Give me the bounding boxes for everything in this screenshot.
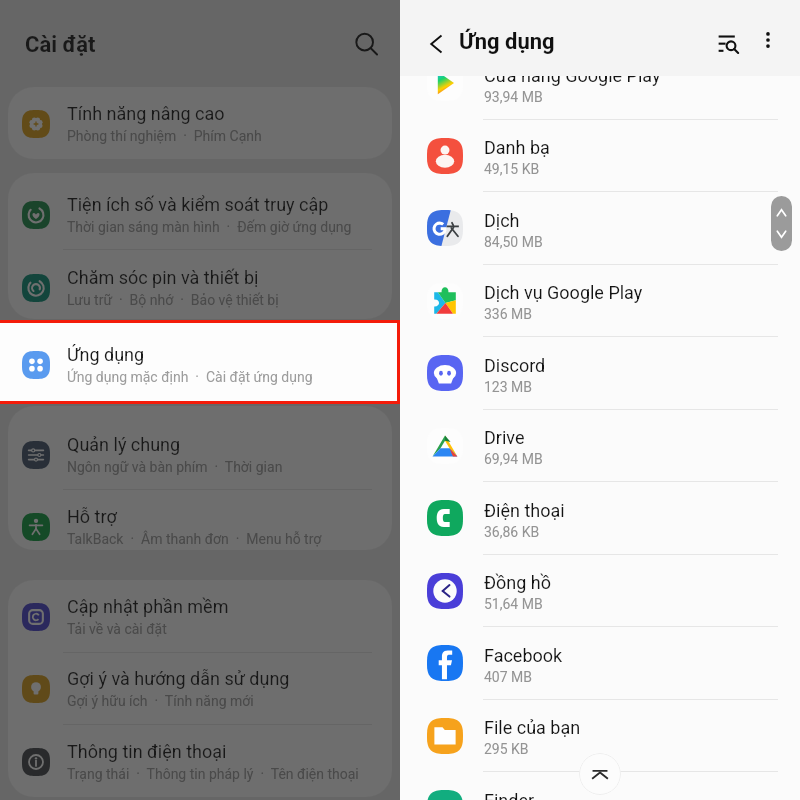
button[interactable]: Gợi ý và hướng dẫn sử dụng — [8, 652, 392, 724]
staticText: Quản lý chung — [67, 434, 181, 455]
staticText: Phòng thí nghiệm · Phím Cạnh — [67, 128, 262, 144]
staticText: Chăm sóc pin và thiết bị — [67, 267, 259, 288]
staticText: Facebook — [484, 645, 563, 666]
button[interactable]: More options — [760, 32, 776, 48]
staticText: Cửa hàng Google Play — [484, 65, 661, 86]
staticText: TalkBack · Âm thanh đơn · Menu hỗ trợ — [67, 531, 322, 547]
button[interactable] — [400, 481, 800, 554]
staticText: 336 MB — [484, 306, 533, 322]
button[interactable]: Tiện ích số và kiểm soát truy cập — [8, 173, 392, 246]
staticText: Thời gian sáng màn hình · Đếm giờ ứng dụ… — [67, 219, 352, 235]
staticText: 36,86 KB — [484, 524, 540, 540]
staticText: Tính năng nâng cao — [67, 103, 225, 124]
button[interactable]: Ứng dụng — [8, 322, 392, 402]
button[interactable] — [400, 191, 800, 264]
staticText: Lưu trữ · Bộ nhớ · Bảo vệ thiết bị — [67, 292, 279, 308]
button[interactable] — [400, 264, 800, 337]
staticText: 49,15 KB — [484, 161, 540, 177]
staticText: Trạng thái · Thông tin pháp lý · Tên điệ… — [67, 766, 359, 782]
button[interactable]: Sort and search — [718, 34, 739, 55]
staticText: 51,64 MB — [484, 596, 543, 612]
button[interactable] — [400, 699, 800, 772]
staticText: Hỗ trợ — [67, 506, 117, 527]
staticText: 407 MB — [484, 669, 533, 685]
staticText: Danh bạ — [484, 137, 550, 158]
button[interactable]: Back — [428, 35, 446, 53]
button[interactable]: Search — [354, 32, 380, 58]
staticText: Gợi ý hữu ích · Tính năng mới — [67, 693, 254, 709]
staticText: Tiện ích số và kiểm soát truy cập — [67, 194, 329, 215]
button[interactable]: Quản lý chung — [8, 406, 392, 478]
staticText: Điện thoại — [484, 500, 565, 521]
staticText: Dịch vụ Google Play — [484, 282, 643, 303]
staticText: Cài đặt — [25, 32, 96, 58]
button[interactable] — [400, 46, 800, 119]
staticText: Drive — [484, 427, 525, 448]
button[interactable] — [400, 626, 800, 699]
staticText: Discord — [484, 355, 546, 376]
staticText: 295 KB — [484, 741, 529, 757]
staticText: 84,50 MB — [484, 234, 543, 250]
staticText: Đồng hồ — [484, 572, 552, 593]
button[interactable]: Ứng dụng — [0, 323, 397, 401]
staticText: Gợi ý và hướng dẫn sử dụng — [67, 668, 290, 689]
button[interactable] — [400, 554, 800, 627]
staticText: Finder — [484, 790, 535, 800]
button[interactable]: Fast scroll — [771, 196, 792, 251]
button[interactable]: Tính năng nâng cao — [8, 87, 392, 159]
staticText: Ứng dụng — [67, 344, 145, 365]
staticText: Ngôn ngữ và bàn phím · Thời gian — [67, 459, 283, 475]
button[interactable] — [400, 771, 800, 800]
staticText: Ứng dụng — [459, 29, 555, 55]
staticText: Ứng dụng — [67, 344, 145, 365]
button[interactable]: Hỗ trợ — [8, 478, 392, 550]
button[interactable]: Thông tin điện thoại — [8, 725, 392, 797]
staticText: Dịch — [484, 210, 520, 231]
button[interactable]: Cập nhật phần mềm — [8, 580, 392, 652]
staticText: Ứng dụng mặc định · Cài đặt ứng dụng — [67, 369, 313, 385]
button[interactable] — [400, 336, 800, 409]
staticText: 69,94 MB — [484, 451, 543, 467]
staticText: Thông tin điện thoại — [67, 741, 227, 762]
button[interactable] — [400, 119, 800, 192]
staticText: 123 MB — [484, 379, 533, 395]
staticText: Cập nhật phần mềm — [67, 596, 229, 617]
staticText: 93,94 MB — [484, 89, 543, 105]
staticText: Ứng dụng mặc định · Cài đặt ứng dụng — [67, 369, 313, 385]
staticText: File của bạn — [484, 717, 581, 738]
button[interactable] — [400, 409, 800, 482]
button[interactable]: Scroll to top — [579, 753, 621, 795]
button[interactable]: Chăm sóc pin và thiết bị — [8, 246, 392, 319]
staticText: Tải về và cài đặt — [67, 621, 167, 637]
